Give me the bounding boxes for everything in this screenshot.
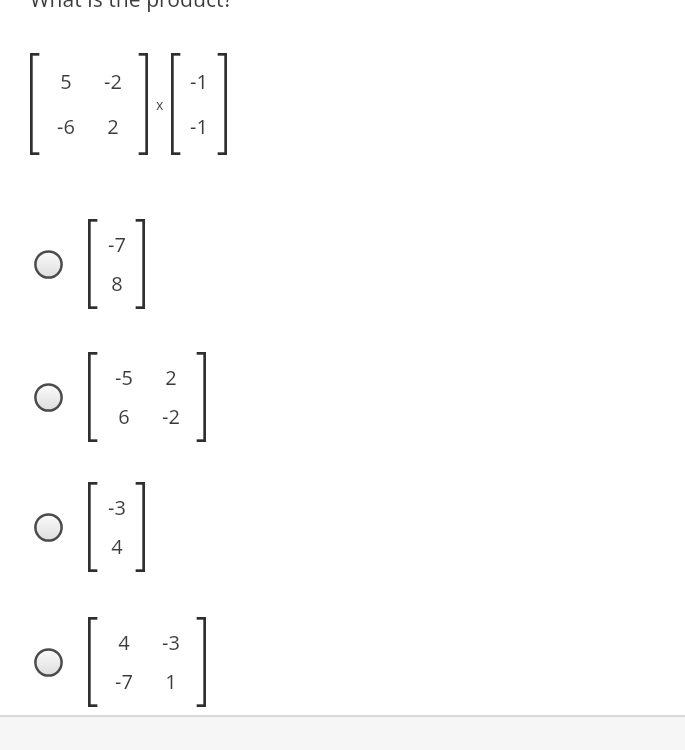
staticText: 4: [118, 629, 130, 656]
staticText: x: [156, 95, 164, 114]
staticText: -1: [190, 68, 208, 95]
staticText: -7: [108, 231, 126, 258]
staticText: 1: [165, 668, 177, 695]
staticText: -3: [108, 494, 126, 521]
button[interactable]: Answer option 1: [0, 215, 685, 315]
staticText: -1: [190, 113, 208, 140]
staticText: 2: [165, 364, 177, 391]
staticText: What is the product?: [30, 0, 233, 14]
staticText: 8: [111, 270, 123, 297]
staticText: -7: [115, 668, 133, 695]
staticText: -2: [104, 68, 122, 95]
staticText: 4: [111, 533, 123, 560]
button[interactable]: Answer option 3: [0, 478, 685, 578]
staticText: 5: [60, 68, 72, 95]
staticText: -2: [162, 403, 180, 430]
button[interactable]: Answer option 4: [0, 613, 685, 713]
staticText: 2: [107, 113, 119, 140]
staticText: -6: [57, 113, 75, 140]
staticText: 6: [118, 403, 130, 430]
button[interactable]: Answer option 2: [0, 348, 685, 448]
staticText: -3: [162, 629, 180, 656]
staticText: -5: [115, 364, 133, 391]
